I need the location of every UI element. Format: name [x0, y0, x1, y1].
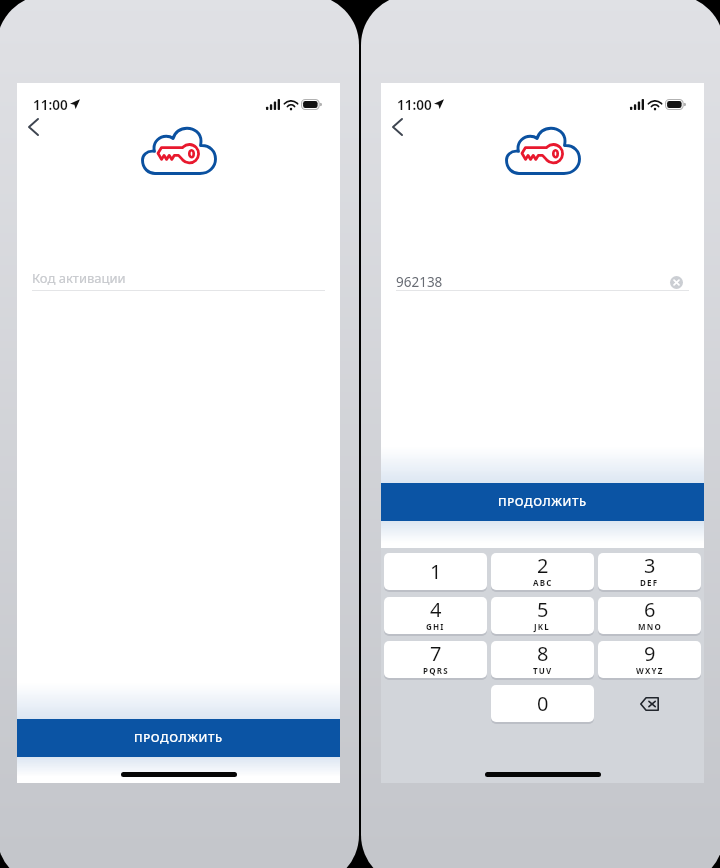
staticText: ABC [533, 577, 553, 588]
staticText: 11:00 [397, 96, 432, 114]
button[interactable]: 6 [598, 597, 701, 634]
staticText: 4 [430, 597, 442, 623]
button[interactable]: 0 [491, 685, 594, 722]
staticText: WXYZ [636, 665, 664, 676]
staticText: TUV [533, 665, 553, 676]
staticText: 2 [537, 553, 549, 579]
staticText: 5 [537, 597, 549, 623]
staticText: MNO [638, 621, 662, 632]
staticText: 7 [430, 641, 442, 667]
button[interactable]: 1 [384, 553, 487, 590]
staticText: GHI [426, 621, 445, 632]
button[interactable]: Backspace [598, 685, 701, 722]
staticText: 0 [537, 690, 549, 717]
staticText: 8 [537, 641, 549, 667]
staticText: JKL [534, 621, 551, 632]
button[interactable]: ПРОДОЛЖИТЬ [17, 719, 340, 757]
staticText: 11:00 [33, 96, 68, 114]
staticText: DEF [640, 577, 659, 588]
button[interactable]: 5 [491, 597, 594, 634]
button[interactable]: 2 [491, 553, 594, 590]
staticText: PQRS [423, 665, 449, 676]
staticText: 962138 [396, 273, 443, 291]
staticText: Код активации [32, 269, 126, 287]
staticText: ПРОДОЛЖИТЬ [498, 494, 587, 510]
button[interactable]: Back [22, 116, 44, 138]
button[interactable]: 4 [384, 597, 487, 634]
staticText: ПРОДОЛЖИТЬ [134, 730, 223, 746]
staticText: 3 [644, 553, 656, 579]
staticText: 1 [430, 558, 442, 585]
button[interactable]: 8 [491, 641, 594, 678]
button[interactable]: Clear text [667, 273, 685, 291]
staticText: 9 [644, 641, 656, 667]
button[interactable]: 9 [598, 641, 701, 678]
staticText: 6 [644, 597, 656, 623]
button[interactable]: ПРОДОЛЖИТЬ [381, 483, 704, 521]
button[interactable]: 7 [384, 641, 487, 678]
button[interactable]: Back [386, 116, 408, 138]
button[interactable]: 3 [598, 553, 701, 590]
